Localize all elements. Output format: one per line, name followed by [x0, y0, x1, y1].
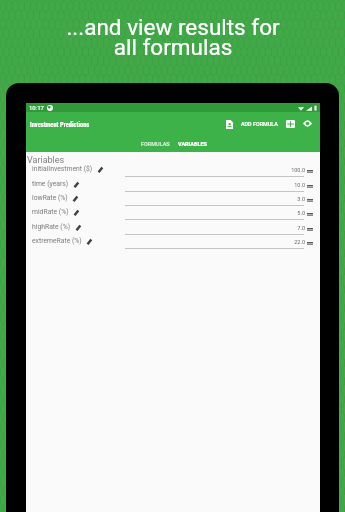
staticText: midRate (%)	[32, 208, 69, 216]
button[interactable]: ADD FORMULA	[223, 115, 281, 133]
staticText: 5.0	[126, 210, 305, 216]
staticText: VARIABLES	[178, 141, 207, 147]
staticText: 10:17	[29, 104, 44, 111]
staticText: 10.0	[126, 182, 305, 188]
staticText: ADD FORMULA	[241, 121, 278, 127]
staticText: 100.0	[126, 167, 305, 173]
button[interactable]: time (years)	[26, 181, 320, 195]
button[interactable]: Grid view	[284, 117, 297, 130]
staticText: 3.0	[126, 196, 305, 202]
button[interactable]: Show results	[301, 117, 314, 130]
button[interactable]: lowRate (%)	[26, 195, 320, 209]
staticText: Investment Predictions	[30, 121, 90, 129]
button[interactable]: initialInvestment ($)	[26, 166, 320, 180]
staticText: extremeRate (%)	[32, 237, 82, 245]
button[interactable]: FORMULAS	[137, 137, 174, 151]
button[interactable]: VARIABLES	[174, 137, 211, 151]
staticText: lowRate (%)	[32, 194, 68, 202]
staticText: time (years)	[32, 180, 69, 188]
staticText: 7.0	[126, 225, 305, 231]
button[interactable]: highRate (%)	[26, 224, 320, 238]
button[interactable]: midRate (%)	[26, 209, 320, 223]
staticText: initialInvestment ($)	[32, 165, 93, 173]
staticText: ...and view results for all formulas	[66, 14, 280, 60]
staticText: highRate (%)	[32, 223, 71, 231]
staticText: 22.0	[126, 239, 305, 245]
staticText: FORMULAS	[141, 141, 170, 147]
button[interactable]: extremeRate (%)	[26, 238, 320, 252]
staticText: Variables	[27, 155, 65, 166]
